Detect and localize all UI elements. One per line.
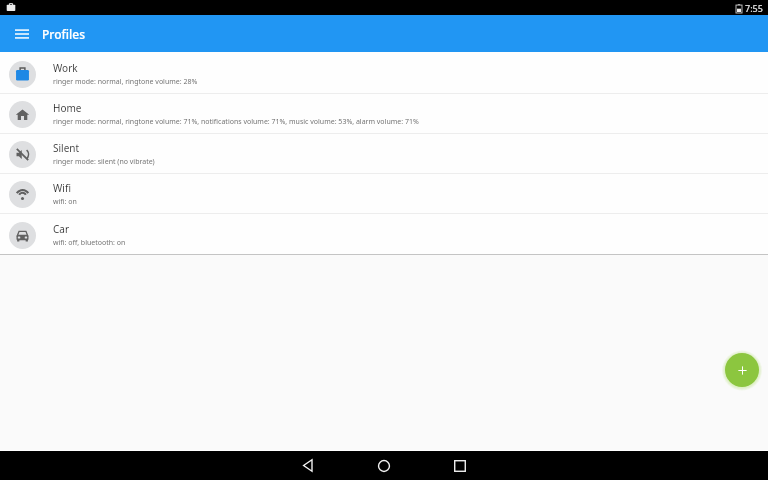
button[interactable]: Wifi bbox=[0, 174, 768, 214]
button[interactable]: Back bbox=[278, 451, 338, 480]
button[interactable]: Recent apps bbox=[430, 451, 490, 480]
button[interactable]: Add profile bbox=[725, 353, 759, 387]
staticText: wifi: off, bluetooth: on bbox=[53, 238, 126, 248]
staticText: ringer mode: normal, ringtone volume: 28… bbox=[53, 77, 198, 87]
button[interactable]: Home bbox=[0, 94, 768, 134]
staticText: Car bbox=[53, 222, 70, 236]
staticText: Home bbox=[53, 101, 82, 115]
staticText: Silent bbox=[53, 141, 80, 155]
staticText: wifi: on bbox=[53, 197, 77, 207]
button[interactable]: Home bbox=[354, 451, 414, 480]
staticText: Profiles bbox=[42, 26, 85, 42]
staticText: Wifi bbox=[53, 181, 71, 195]
staticText: Work bbox=[53, 61, 78, 75]
button[interactable]: Open navigation drawer bbox=[10, 22, 34, 46]
button[interactable]: Silent bbox=[0, 134, 768, 174]
staticText: ringer mode: silent (no vibrate) bbox=[53, 157, 155, 167]
staticText: 7:55 bbox=[745, 2, 763, 14]
button[interactable]: Work bbox=[0, 54, 768, 94]
staticText: ringer mode: normal, ringtone volume: 71… bbox=[53, 117, 419, 127]
button[interactable]: Car bbox=[0, 215, 768, 255]
